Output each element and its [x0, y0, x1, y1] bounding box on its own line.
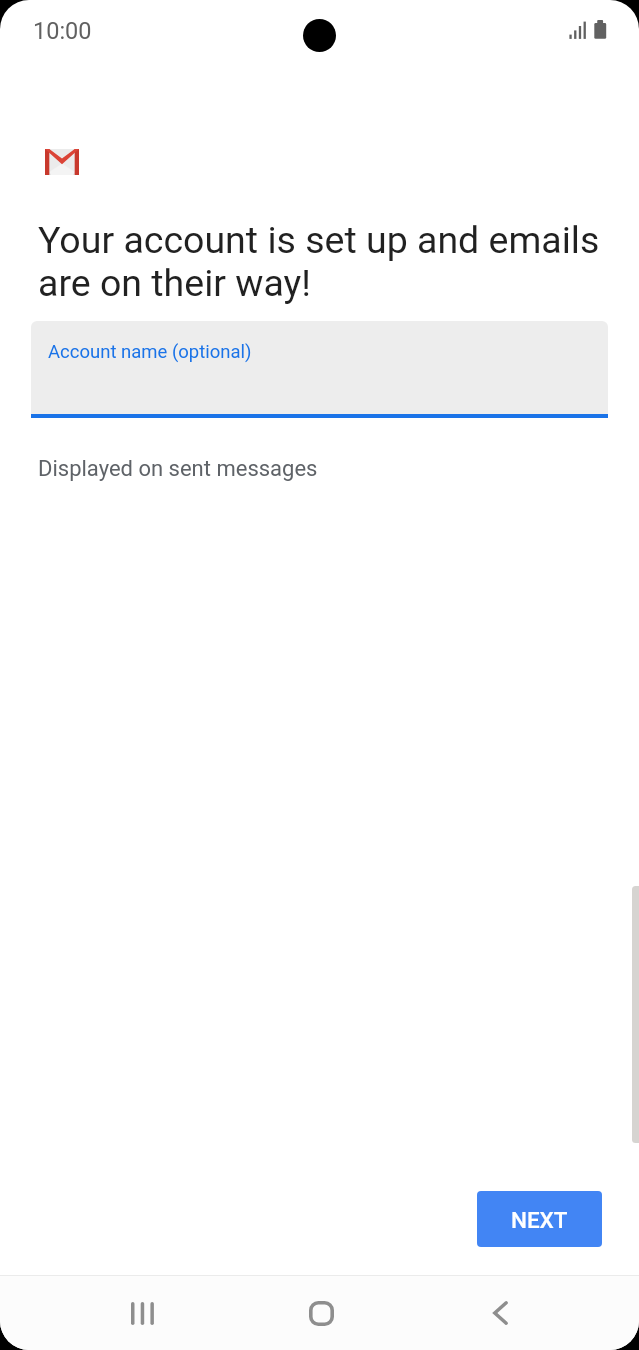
- staticText: Account name (optional): [48, 341, 252, 363]
- staticText: Your account is set up and emails are on…: [38, 219, 608, 305]
- staticText: NEXT: [511, 1207, 568, 1233]
- button[interactable]: Home: [232, 1276, 411, 1350]
- button[interactable]: Recent apps: [53, 1276, 232, 1350]
- staticText: 10:00: [33, 17, 92, 45]
- button[interactable]: Account name (optional): [31, 321, 608, 418]
- button[interactable]: NEXT: [477, 1191, 602, 1247]
- button[interactable]: Back: [411, 1276, 590, 1350]
- staticText: Displayed on sent messages: [38, 456, 318, 482]
